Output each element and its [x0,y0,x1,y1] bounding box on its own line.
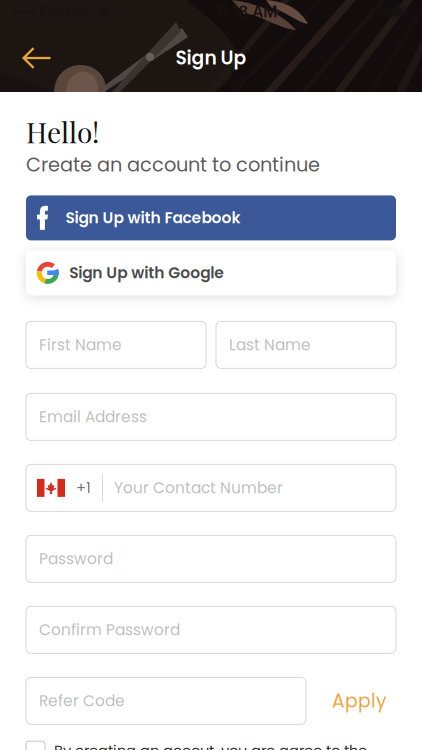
staticText: Sign Up with Facebook [66,207,241,229]
staticText: Apply [332,688,387,714]
button[interactable]: Accept terms [26,741,45,750]
staticText: Confirm Password [39,619,180,641]
staticText: 11:18 AM [215,3,277,21]
staticText: Password [39,548,113,570]
staticText: Your Contact Number [114,477,283,499]
staticText: First Name [39,334,122,356]
staticText: Last Name [229,334,311,356]
staticText: Refer Code [39,690,125,712]
button[interactable]: Sign Up with Facebook [26,195,396,240]
button[interactable]: Back [0,33,60,82]
staticText: Sign Up with Google [69,262,224,284]
button[interactable]: Apply [323,678,396,723]
button[interactable]: Sign Up with Google [26,250,396,295]
staticText: Email Address [39,406,147,428]
staticText: +1 [76,478,91,498]
staticText: Sign Up [175,45,246,71]
staticText: Create an account to continue [26,151,320,178]
staticText: By creating an accout, you are agree to … [54,740,387,750]
staticText: Hello! [26,113,99,150]
